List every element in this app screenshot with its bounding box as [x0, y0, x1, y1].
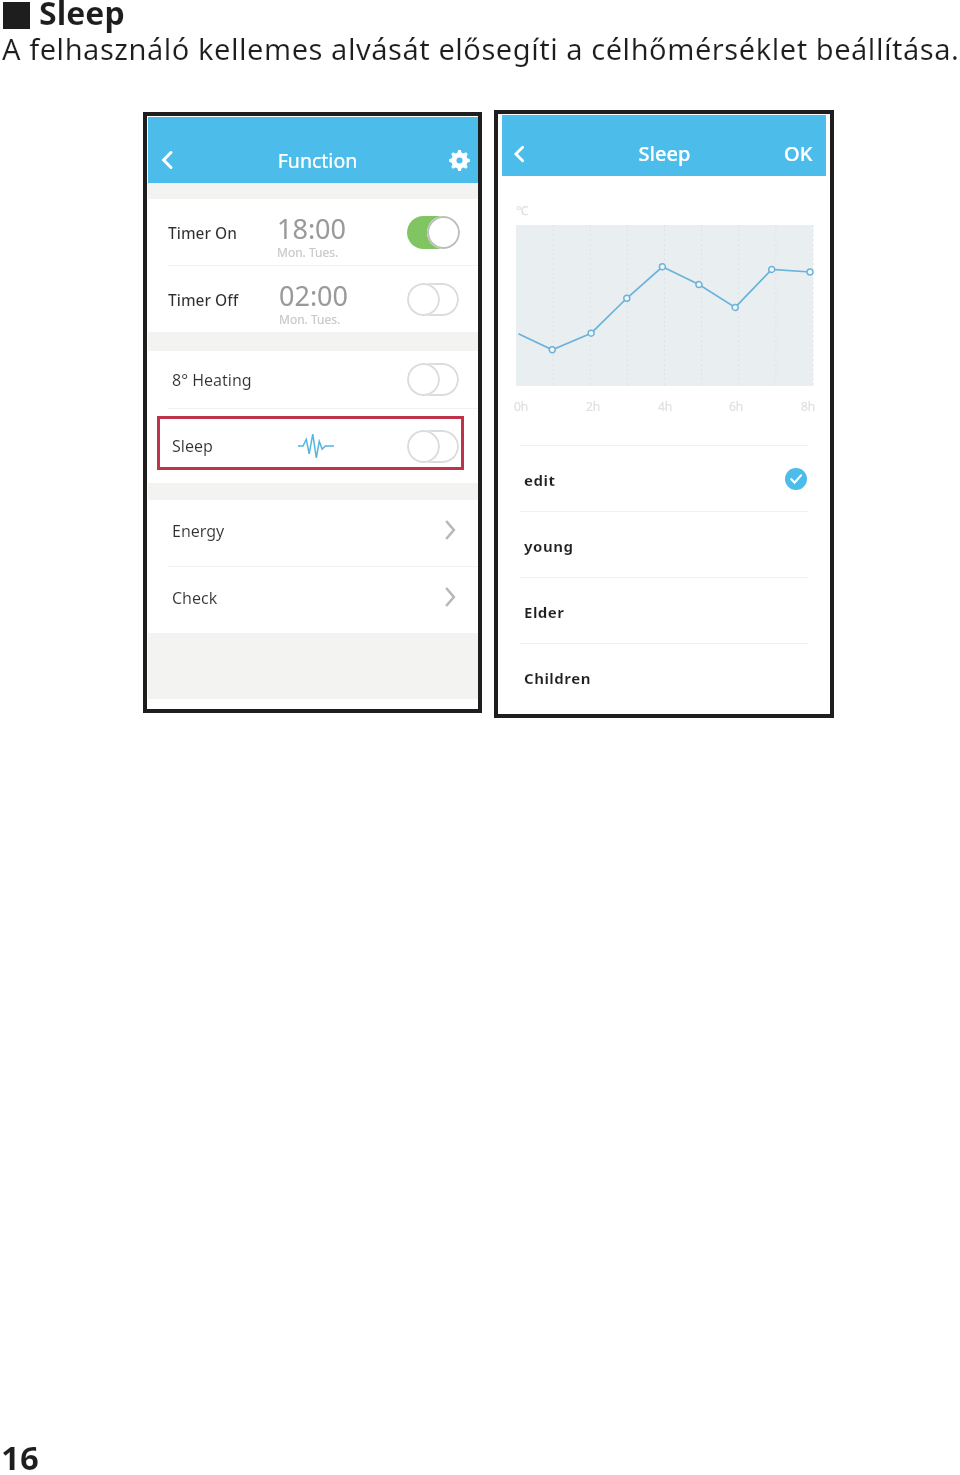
button[interactable]: OK	[770, 131, 826, 176]
staticText: 4h	[658, 398, 673, 414]
button[interactable]: Sleep	[148, 409, 479, 483]
staticText: 2h	[586, 398, 601, 414]
staticText: 8h	[801, 398, 816, 414]
staticText: OK	[784, 140, 813, 167]
staticText: 02:00	[279, 277, 349, 314]
button[interactable]: Timer On	[148, 199, 479, 265]
button[interactable]: Energy	[148, 500, 479, 566]
staticText: edit	[524, 470, 556, 490]
staticText: Sleep	[547, 140, 782, 167]
staticText: 8° Heating	[172, 369, 252, 391]
button[interactable]: Toggle	[407, 363, 459, 396]
button[interactable]: Back	[502, 131, 535, 176]
staticText: young	[524, 536, 574, 556]
button[interactable]: young	[502, 512, 826, 577]
staticText: ℃	[516, 202, 528, 218]
staticText: Children	[524, 668, 591, 688]
button[interactable]: Check	[148, 567, 479, 633]
button[interactable]: Elder	[502, 578, 826, 643]
button[interactable]: Children	[502, 644, 826, 709]
staticText: 18:00	[277, 210, 347, 247]
button[interactable]: Timer Off	[148, 266, 479, 332]
other: Selected	[785, 468, 807, 490]
staticText: Timer Off	[168, 289, 239, 310]
staticText: Energy	[172, 520, 225, 542]
staticText: Mon. Tues.	[279, 311, 341, 327]
button[interactable]: 8° Heating	[148, 351, 479, 408]
staticText: Elder	[524, 602, 565, 622]
staticText: Mon. Tues.	[277, 244, 339, 260]
button[interactable]: Toggle	[407, 216, 459, 249]
staticText: Check	[172, 587, 218, 609]
button[interactable]: Back	[148, 137, 186, 183]
staticText: Timer On	[168, 222, 237, 243]
staticText: A felhasználó kellemes alvását elősegíti…	[2, 29, 960, 68]
button[interactable]: edit	[502, 446, 826, 511]
staticText: 0h	[514, 398, 529, 414]
staticText: 16	[1, 1435, 39, 1475]
staticText: Sleep	[39, 0, 125, 35]
button[interactable]: Settings	[439, 137, 479, 183]
button[interactable]: Toggle	[407, 283, 459, 316]
staticText: Function	[191, 147, 444, 174]
staticText: Sleep	[172, 435, 213, 457]
button[interactable]: Toggle	[407, 430, 459, 463]
staticText: 6h	[729, 398, 744, 414]
